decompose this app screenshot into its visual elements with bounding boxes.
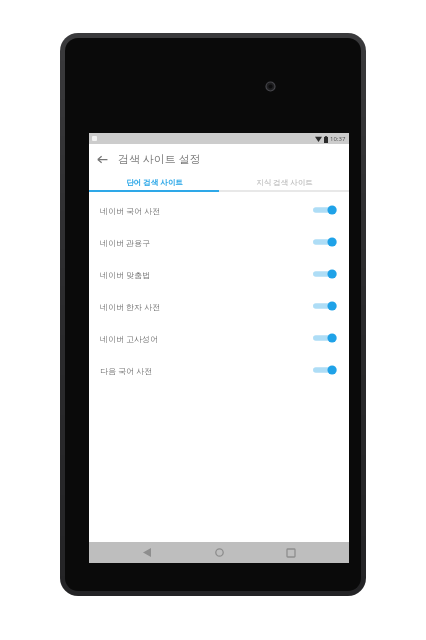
button[interactable]: Toggle site on [312,331,338,345]
button[interactable]: 단어 검색 사이트 [89,173,219,190]
button[interactable]: 지식 검색 사이트 [219,173,349,190]
button[interactable]: Back [89,146,115,172]
button[interactable]: 네이버 한자 사전 [89,290,349,322]
staticText: 지식 검색 사이트 [256,177,313,187]
button[interactable]: Recent apps [277,542,305,563]
button[interactable]: Toggle site on [312,267,338,281]
button[interactable]: 네이버 고사성어 [89,322,349,354]
button[interactable]: 네이버 국어 사전 [89,194,349,226]
button[interactable]: Back [133,542,161,563]
staticText: 검색 사이트 설정 [118,151,201,166]
staticText: 네이버 한자 사전 [100,301,312,312]
button[interactable]: 다음 국어 사전 [89,354,349,386]
staticText: 네이버 관용구 [100,237,312,248]
button[interactable]: Toggle site on [312,203,338,217]
staticText: 네이버 국어 사전 [100,205,312,216]
staticText: 다음 국어 사전 [100,365,312,376]
button[interactable]: 네이버 맞춤법 [89,258,349,290]
staticText: 네이버 고사성어 [100,333,312,344]
staticText: 네이버 맞춤법 [100,269,312,280]
button[interactable]: Home [205,542,233,563]
button[interactable]: Toggle site on [312,363,338,377]
button[interactable]: 네이버 관용구 [89,226,349,258]
staticText: 10:37 [330,135,346,143]
staticText: 단어 검색 사이트 [126,177,183,187]
button[interactable]: Toggle site on [312,299,338,313]
button[interactable]: Toggle site on [312,235,338,249]
